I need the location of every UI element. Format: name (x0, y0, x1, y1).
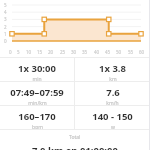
button[interactable]: Workout intensity chart (0, 0, 150, 57)
staticText: Total (69, 134, 81, 141)
staticText: 7.6 (106, 86, 120, 99)
staticText: km (109, 76, 117, 81)
staticText: 45 (105, 49, 111, 55)
button[interactable]: 1x 3.8 (75, 58, 150, 81)
staticText: bpm (32, 124, 43, 129)
staticText: 5 (4, 2, 7, 8)
staticText: 4 (4, 9, 7, 15)
staticText: 1x 3.8 (99, 62, 126, 75)
staticText: 3 (4, 16, 7, 22)
staticText: 07:49–07:59 (10, 86, 64, 99)
staticText: 1 (4, 31, 7, 37)
staticText: 35 (82, 49, 88, 55)
staticText: 0 (9, 49, 12, 55)
staticText: 10 (26, 49, 32, 55)
staticText: 140 - 150 (92, 110, 133, 123)
staticText: 25 (60, 49, 66, 55)
staticText: min (32, 76, 42, 81)
button[interactable]: 140 - 150 (75, 106, 150, 129)
staticText: 20 (48, 49, 54, 55)
staticText: 40 (94, 49, 100, 55)
button[interactable]: Total (0, 130, 150, 150)
staticText: 50 (116, 49, 122, 55)
staticText: min/km (28, 100, 47, 105)
staticText: 60 (139, 49, 145, 55)
staticText: w (111, 124, 115, 129)
staticText: 7.0 km en 01:00:00 (32, 144, 118, 150)
button[interactable]: 160–170 (0, 106, 74, 129)
staticText: km/h (106, 100, 119, 105)
button[interactable]: 07:49–07:59 (0, 82, 74, 105)
staticText: 160–170 (18, 110, 56, 123)
button[interactable]: 1x 30:00 (0, 58, 74, 81)
staticText: 1x 30:00 (18, 62, 56, 75)
button[interactable]: 7.6 (75, 82, 150, 105)
staticText: 2 (4, 24, 7, 30)
staticText: 30 (71, 49, 77, 55)
staticText: 0 (4, 38, 7, 44)
staticText: 5 (17, 49, 20, 55)
staticText: 15 (37, 49, 43, 55)
staticText: 55 (128, 49, 134, 55)
